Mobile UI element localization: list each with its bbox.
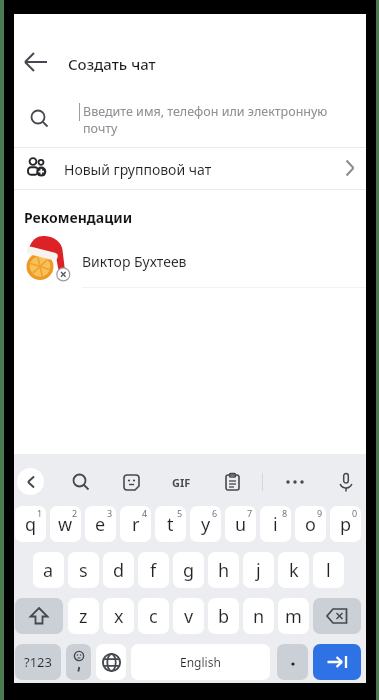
button[interactable]: l — [313, 552, 344, 588]
button[interactable]: GIF — [166, 470, 196, 494]
button[interactable]: m — [278, 598, 309, 634]
button[interactable]: s — [68, 552, 99, 588]
staticText: ?123 — [24, 653, 52, 671]
staticText: Введите имя, телефон или электронную — [83, 103, 328, 120]
button[interactable]: o — [295, 506, 326, 542]
staticText: b — [218, 604, 230, 629]
staticText: j — [256, 558, 261, 583]
staticText: 3 — [107, 507, 113, 519]
button[interactable]: Новый групповой чат — [14, 148, 366, 189]
staticText: r — [132, 512, 140, 537]
button[interactable]: t — [155, 506, 186, 542]
staticText: o — [305, 512, 316, 537]
button[interactable] — [66, 644, 91, 680]
staticText: 7 — [247, 507, 253, 519]
staticText: 0 — [352, 507, 358, 519]
staticText: k — [289, 558, 299, 583]
staticText: z — [79, 604, 88, 629]
button[interactable]: c — [138, 598, 169, 634]
staticText: m — [285, 604, 302, 629]
staticText: s — [79, 558, 88, 583]
button[interactable]: i — [260, 506, 291, 542]
staticText: 6 — [212, 507, 218, 519]
button[interactable] — [68, 469, 94, 495]
button[interactable]: r — [120, 506, 151, 542]
staticText: English — [180, 654, 221, 670]
button[interactable] — [14, 230, 366, 286]
staticText: t — [167, 512, 174, 537]
staticText: l — [326, 558, 331, 583]
button[interactable]: k — [278, 552, 309, 588]
staticText: 2 — [72, 507, 78, 519]
staticText: 4 — [142, 507, 148, 519]
button[interactable] — [313, 644, 361, 680]
button[interactable] — [96, 644, 126, 680]
staticText: h — [218, 558, 230, 583]
staticText: 9 — [317, 507, 323, 519]
button[interactable] — [333, 469, 359, 495]
button[interactable]: a — [33, 552, 64, 588]
button[interactable] — [118, 469, 144, 495]
button[interactable]: j — [243, 552, 274, 588]
staticText: 8 — [282, 507, 288, 519]
button[interactable] — [219, 469, 245, 495]
button[interactable]: u — [225, 506, 256, 542]
button[interactable] — [282, 469, 308, 495]
staticText: u — [235, 512, 247, 537]
button[interactable]: e — [85, 506, 116, 542]
button[interactable]: x — [103, 598, 134, 634]
button[interactable]: b — [208, 598, 239, 634]
staticText: x — [114, 604, 124, 629]
staticText: 1 — [37, 507, 43, 519]
button[interactable] — [313, 598, 361, 634]
staticText: Создать чат — [68, 54, 156, 74]
staticText: почту — [83, 120, 118, 137]
staticText: n — [253, 604, 265, 629]
staticText: c — [149, 604, 158, 629]
staticText: w — [58, 512, 73, 537]
staticText: v — [184, 604, 194, 629]
button[interactable] — [15, 598, 63, 634]
staticText: p — [340, 512, 352, 537]
staticText: q — [25, 512, 37, 537]
button[interactable]: p — [330, 506, 361, 542]
staticText: i — [273, 512, 278, 537]
button[interactable]: g — [173, 552, 204, 588]
button[interactable] — [14, 95, 366, 145]
button[interactable]: y — [190, 506, 221, 542]
button[interactable]: n — [243, 598, 274, 634]
button[interactable] — [18, 48, 58, 78]
button[interactable] — [277, 644, 308, 680]
staticText: a — [43, 558, 54, 583]
button[interactable]: v — [173, 598, 204, 634]
button[interactable] — [17, 468, 44, 495]
staticText: GIF — [172, 475, 191, 490]
staticText: Новый групповой чат — [64, 160, 212, 179]
staticText: Рекомендации — [24, 208, 133, 227]
button[interactable]: h — [208, 552, 239, 588]
staticText: Виктор Бухтеев — [82, 252, 187, 271]
button[interactable]: z — [68, 598, 99, 634]
staticText: g — [183, 558, 195, 583]
staticText: d — [113, 558, 125, 583]
button[interactable]: English — [131, 644, 270, 680]
button[interactable]: q — [15, 506, 46, 542]
staticText: 5 — [177, 507, 183, 519]
button[interactable]: w — [50, 506, 81, 542]
staticText: e — [95, 512, 106, 537]
button[interactable]: f — [138, 552, 169, 588]
staticText: f — [150, 558, 157, 583]
button[interactable]: ?123 — [15, 644, 61, 680]
button[interactable]: d — [103, 552, 134, 588]
staticText: y — [201, 512, 211, 537]
